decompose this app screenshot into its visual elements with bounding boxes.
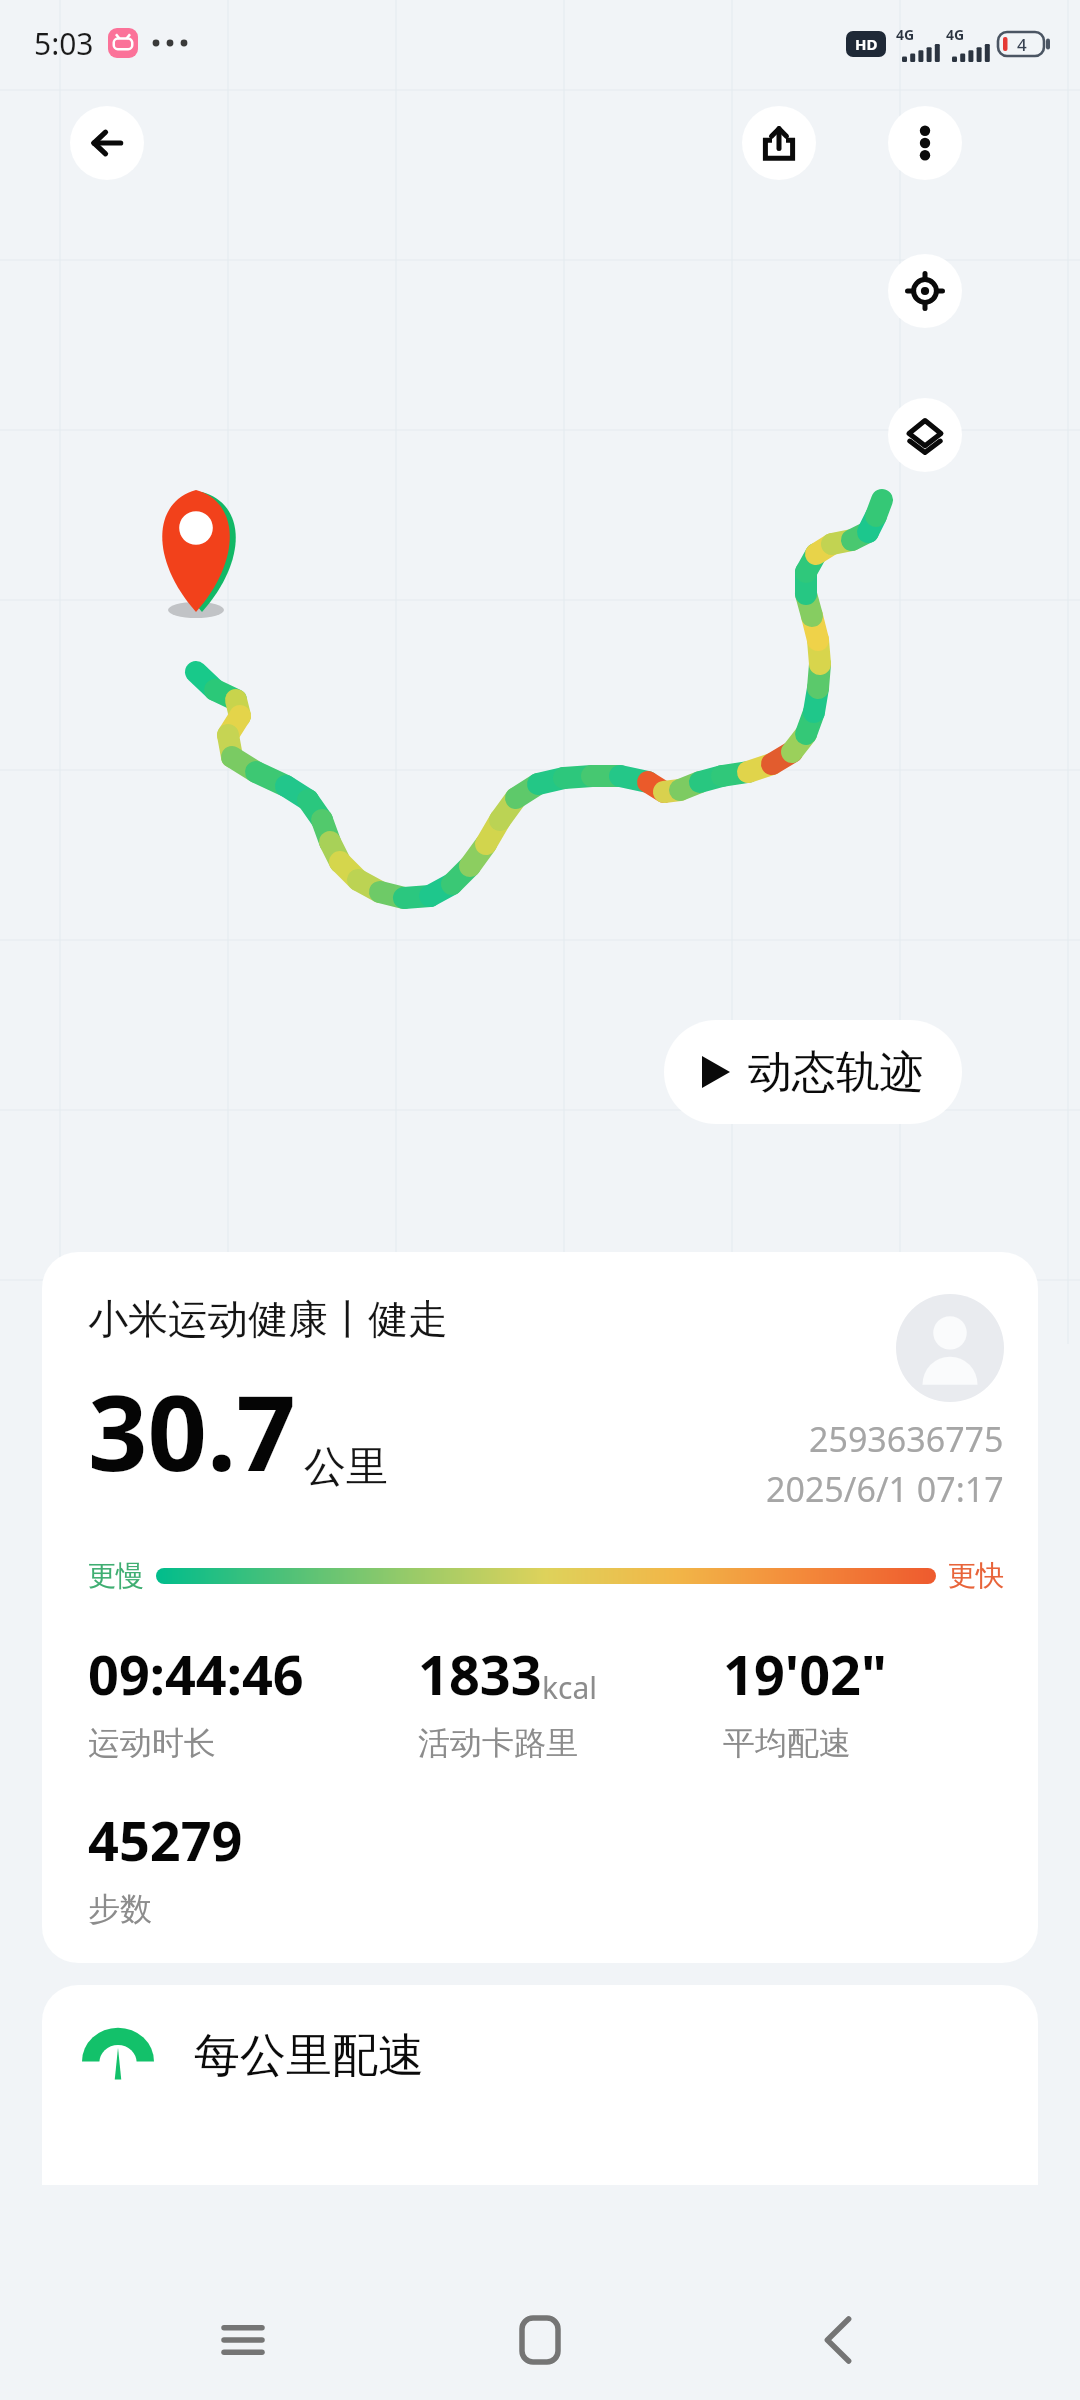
staticText: 小米运动健康丨健走 [88,1294,448,1344]
button[interactable]: Home [485,2285,595,2395]
staticText: 更快 [948,1558,1004,1593]
button[interactable]: Back [783,2285,893,2395]
staticText: kcal [542,1667,597,1708]
button[interactable]: Share [742,106,816,180]
staticText: 4G [896,25,915,44]
button[interactable]: 动态轨迹 [664,1020,962,1124]
staticText: 4G [946,25,965,44]
button[interactable]: 小米运动健康丨健走 [42,1252,1038,1963]
staticText: 45279 [88,1803,243,1877]
staticText: 09:44:46 [88,1637,304,1711]
staticText: 5:03 [34,23,94,64]
staticText: 活动卡路里 [418,1723,578,1763]
staticText: 2025/6/1 07:17 [766,1466,1004,1512]
button[interactable]: Recents [188,2285,298,2395]
staticText: 运动时长 [88,1723,216,1763]
button[interactable]: My location [888,254,962,328]
button[interactable]: Back [70,106,144,180]
staticText: 2593636775 [809,1416,1004,1462]
staticText: 更慢 [88,1558,144,1593]
staticText: 4 [1017,33,1027,56]
button[interactable]: 每公里配速 [42,1985,1038,2185]
staticText: 步数 [88,1889,152,1929]
staticText: 19'02" [723,1637,887,1711]
staticText: HD [855,34,878,54]
staticText: 30.7 [88,1360,296,1502]
button[interactable]: Map layers [888,398,962,472]
staticText: 公里 [304,1441,388,1494]
staticText: 动态轨迹 [748,1045,924,1100]
staticText: 每公里配速 [194,2027,424,2085]
staticText: 平均配速 [723,1723,851,1763]
staticText: 1833 [418,1637,542,1711]
button[interactable]: More options [888,106,962,180]
